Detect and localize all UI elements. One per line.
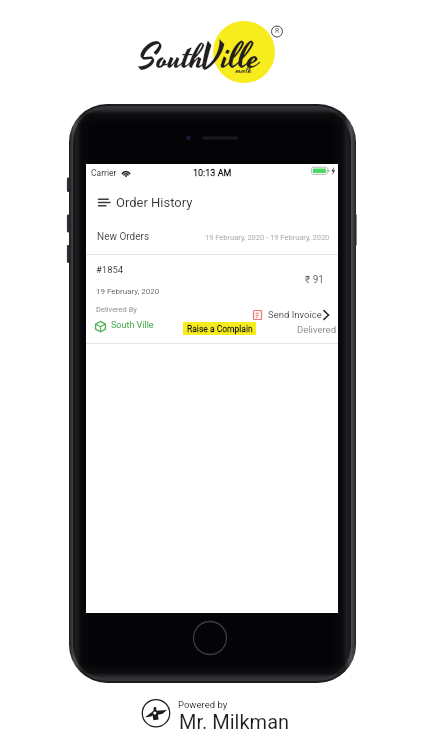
staticText: South xyxy=(139,34,206,84)
staticText: Send Invoice xyxy=(268,309,322,320)
staticText: #1854 xyxy=(96,264,124,275)
staticText: South Ville xyxy=(111,320,154,331)
staticText: 10:13 AM xyxy=(193,168,232,179)
button[interactable]: #1854 xyxy=(86,255,338,343)
staticText: New Orders xyxy=(97,231,150,243)
staticText: Mr. Milkman xyxy=(179,710,290,733)
staticText: 19 February, 2020 - 19 February, 2020 xyxy=(205,233,330,242)
staticText: R xyxy=(275,27,280,35)
staticText: mælk xyxy=(236,64,253,77)
button[interactable]: Raise a Complain xyxy=(183,322,256,335)
staticText: ₹ 91 xyxy=(305,274,324,286)
button[interactable]: Send Invoice xyxy=(253,309,330,320)
staticText: Delivered xyxy=(297,324,336,335)
staticText: Delivered By xyxy=(96,305,137,314)
staticText: 19 February, 2020 xyxy=(96,287,160,296)
staticText: Powered by xyxy=(178,699,228,710)
button[interactable]: Menu xyxy=(91,188,116,216)
staticText: Carrier xyxy=(91,168,117,178)
staticText: Ville xyxy=(201,32,261,85)
staticText: Raise a Complain xyxy=(187,324,253,334)
staticText: Order History xyxy=(116,195,193,210)
